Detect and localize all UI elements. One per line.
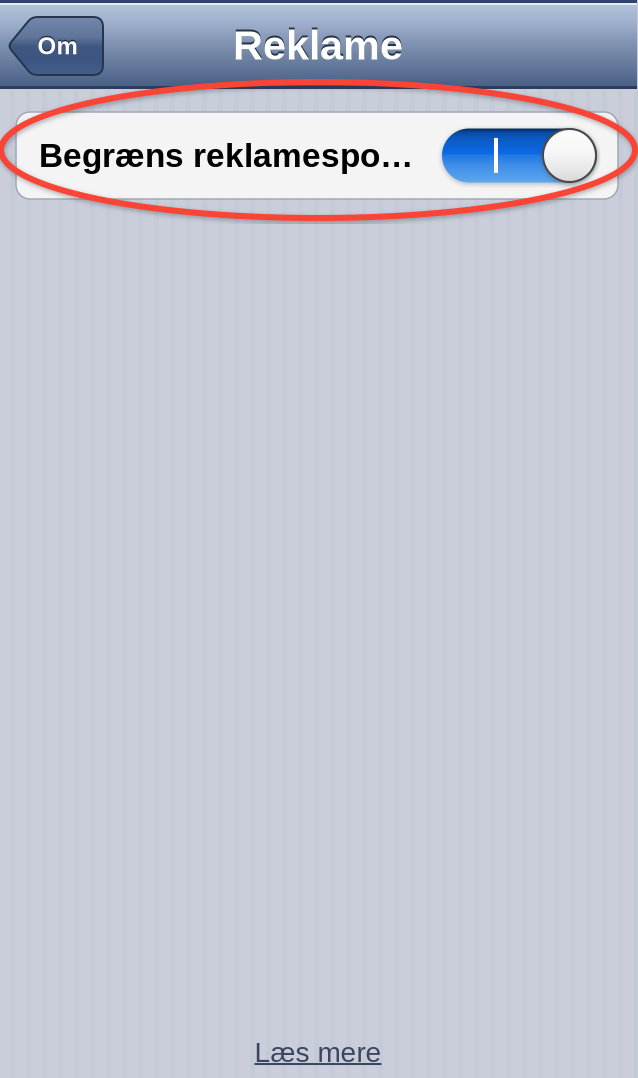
staticText: Reklame xyxy=(233,22,403,68)
staticText: Begræns reklamespo… xyxy=(39,137,413,174)
button[interactable]: Begræns reklamespo… xyxy=(16,112,618,199)
button[interactable]: Læs mere xyxy=(254,1037,381,1068)
staticText: Læs mere xyxy=(254,1037,381,1068)
button[interactable]: Om xyxy=(8,17,103,75)
staticText: Om xyxy=(37,33,77,59)
